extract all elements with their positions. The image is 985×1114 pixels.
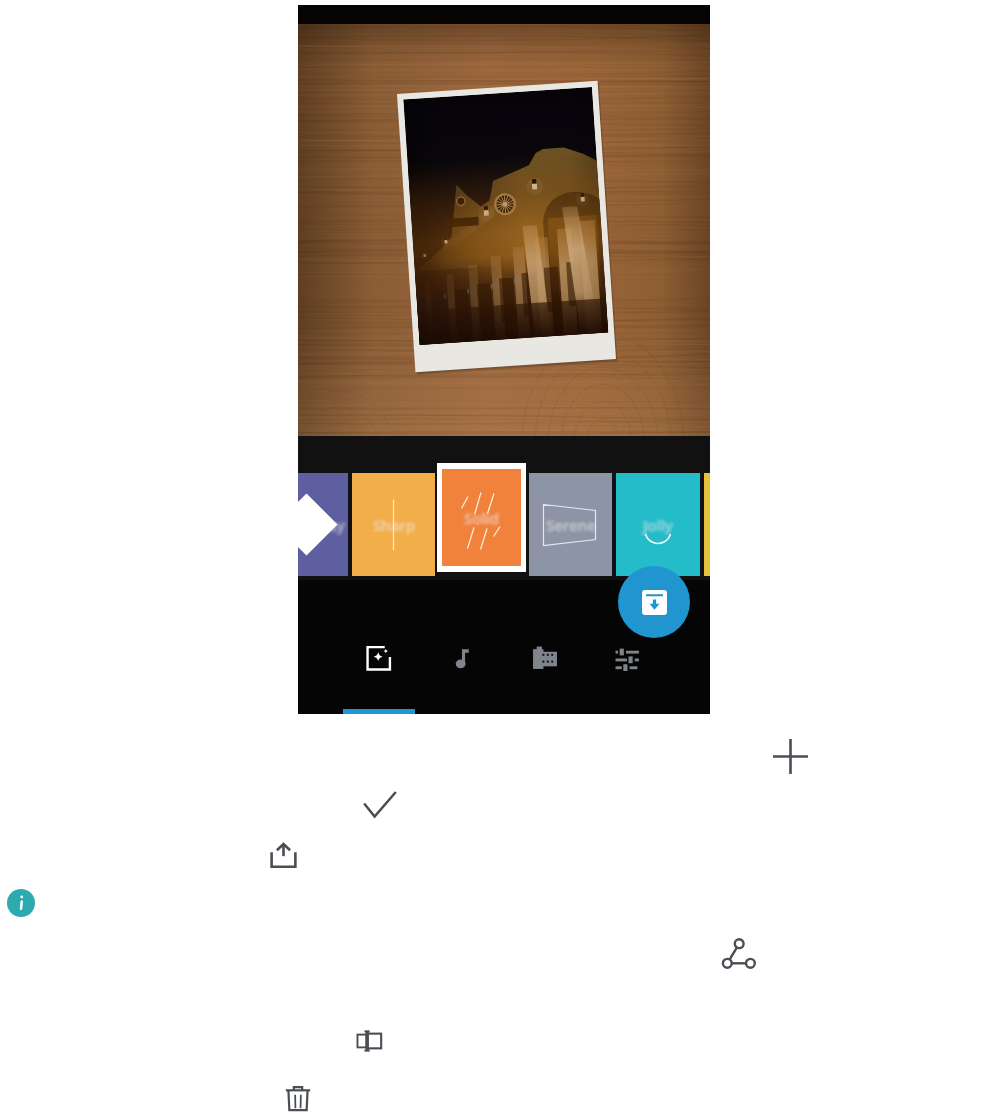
- staticText: Solid: [463, 509, 498, 529]
- staticText: Serene: [549, 517, 599, 537]
- button[interactable]: Solid filter, selected: [442, 469, 521, 566]
- staticText: Solid: [466, 506, 501, 526]
- staticText: Solid: [463, 508, 498, 528]
- staticText: Solid: [467, 507, 502, 527]
- staticText: Decay: [303, 518, 347, 538]
- button[interactable]: Jolly filter: [616, 473, 700, 576]
- staticText: Decay: [304, 516, 348, 536]
- staticText: Sharp: [375, 513, 417, 533]
- staticText: Solid: [465, 511, 500, 531]
- staticText: Sharp: [376, 512, 418, 532]
- staticText: Sharp: [374, 513, 416, 533]
- staticText: Sharp: [374, 512, 416, 532]
- staticText: Solid: [466, 505, 501, 525]
- staticText: Decay: [301, 518, 345, 538]
- staticText: Jolly: [645, 515, 675, 535]
- staticText: Serene: [546, 517, 596, 537]
- staticText: Sharp: [376, 516, 418, 536]
- staticText: Jolly: [646, 518, 676, 538]
- staticText: Jolly: [644, 512, 674, 532]
- staticText: Solid: [464, 508, 499, 528]
- staticText: Serene: [545, 512, 595, 532]
- staticText: Jolly: [645, 518, 675, 538]
- staticText: Solid: [467, 506, 502, 526]
- staticText: Jolly: [640, 516, 670, 536]
- staticText: Serene: [548, 513, 598, 533]
- staticText: Serene: [545, 514, 595, 534]
- staticText: Jolly: [642, 514, 672, 534]
- staticText: Sharp: [375, 518, 417, 538]
- staticText: Serene: [543, 515, 593, 535]
- button[interactable]: Share: [260, 832, 306, 878]
- button[interactable]: Enhance: [353, 634, 405, 682]
- staticText: Jolly: [641, 513, 671, 533]
- staticText: Sharp: [372, 512, 414, 532]
- staticText: Solid: [466, 510, 501, 530]
- staticText: Decay: [302, 517, 346, 537]
- staticText: Sharp: [370, 514, 412, 534]
- staticText: Jolly: [641, 512, 671, 532]
- staticText: Decay: [301, 517, 345, 537]
- staticText: Jolly: [640, 512, 670, 532]
- staticText: Decay: [302, 516, 346, 536]
- button[interactable]: Save: [618, 566, 690, 638]
- button[interactable]: Sharp filter: [352, 473, 435, 576]
- button[interactable]: Flip: [347, 1019, 391, 1063]
- staticText: Solid: [466, 507, 501, 527]
- staticText: Serene: [548, 515, 598, 535]
- staticText: Jolly: [645, 517, 675, 537]
- staticText: Decay: [301, 514, 345, 534]
- button[interactable]: Info: [7, 889, 35, 917]
- staticText: Jolly: [646, 513, 676, 533]
- staticText: Solid: [461, 505, 496, 525]
- staticText: Decay: [302, 515, 346, 535]
- staticText: Solid: [462, 509, 497, 529]
- staticText: Solid: [463, 506, 498, 526]
- staticText: Jolly: [643, 517, 673, 537]
- staticText: Solid: [466, 511, 501, 531]
- staticText: Decay: [299, 512, 343, 532]
- staticText: Solid: [465, 508, 500, 528]
- staticText: Sharp: [372, 516, 414, 536]
- staticText: Solid: [461, 509, 496, 529]
- button[interactable]: Add: [766, 732, 814, 780]
- staticText: Solid: [464, 505, 499, 525]
- staticText: Serene: [549, 513, 599, 533]
- staticText: Jolly: [640, 515, 670, 535]
- staticText: Solid: [464, 511, 499, 531]
- staticText: Decay: [300, 513, 344, 533]
- button[interactable]: Adjust: [602, 634, 654, 682]
- staticText: Serene: [548, 514, 598, 534]
- button[interactable]: Delete: [276, 1076, 320, 1114]
- staticText: Jolly: [646, 514, 676, 534]
- staticText: Decay: [299, 515, 343, 535]
- staticText: Sharp: [373, 516, 415, 536]
- staticText: Solid: [467, 510, 502, 530]
- staticText: Decay: [303, 512, 347, 532]
- button[interactable]: Decay filter: [298, 473, 348, 576]
- staticText: Jolly: [645, 513, 675, 533]
- staticText: Serene: [544, 514, 594, 534]
- staticText: Serene: [547, 513, 597, 533]
- button[interactable]: Serene filter: [529, 473, 612, 576]
- button[interactable]: Done: [355, 780, 405, 830]
- staticText: Serene: [546, 516, 596, 536]
- staticText: Sharp: [374, 518, 416, 538]
- staticText: Jolly: [642, 518, 672, 538]
- staticText: Serene: [549, 518, 599, 538]
- staticText: Sharp: [376, 515, 418, 535]
- staticText: Solid: [461, 511, 496, 531]
- button[interactable]: Music: [437, 634, 489, 682]
- button[interactable]: Film: [519, 634, 571, 682]
- staticText: Solid: [462, 506, 497, 526]
- staticText: Solid: [467, 508, 502, 528]
- staticText: Solid: [464, 510, 499, 530]
- staticText: Serene: [543, 518, 593, 538]
- button[interactable]: Share network: [714, 929, 762, 977]
- staticText: Sharp: [374, 517, 416, 537]
- staticText: Decay: [298, 517, 342, 537]
- staticText: Decay: [304, 518, 348, 538]
- staticText: Solid: [461, 510, 496, 530]
- staticText: Serene: [543, 512, 593, 532]
